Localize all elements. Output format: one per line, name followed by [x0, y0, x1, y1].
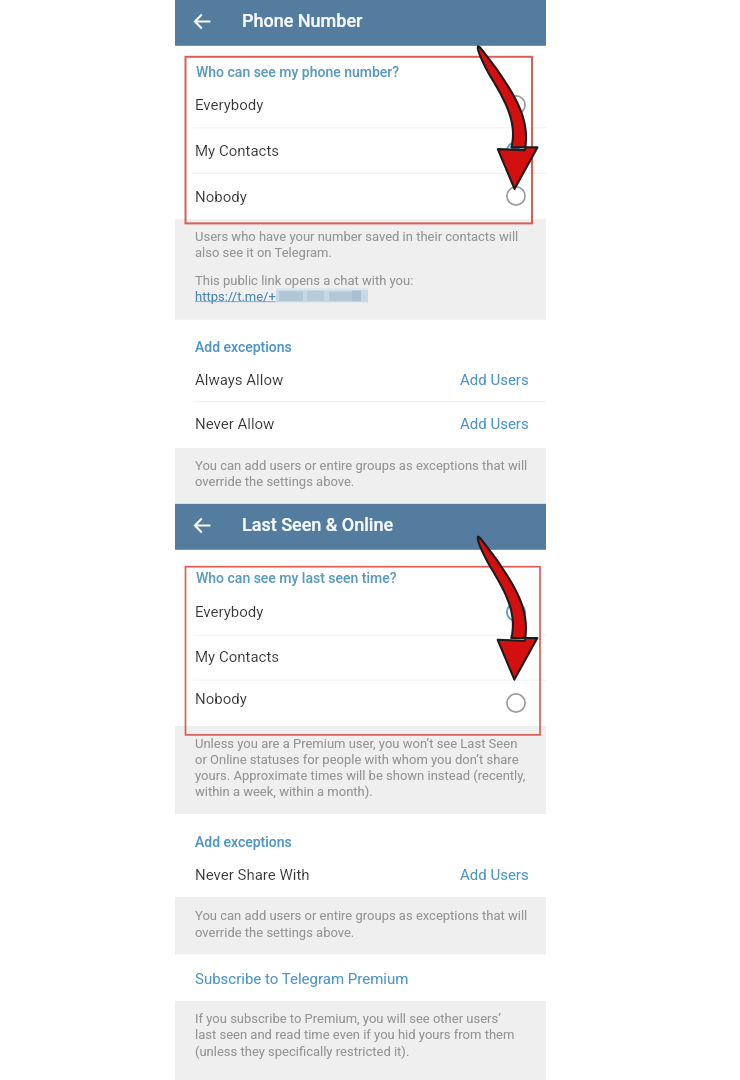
staticText: also see it on Telegram.	[195, 245, 332, 260]
staticText: My Contacts	[195, 142, 280, 160]
button[interactable]: Never Share With	[175, 850, 546, 897]
button[interactable]: Everybody	[175, 82, 546, 128]
staticText: override the settings above.	[195, 925, 355, 940]
staticText: Everybody	[195, 603, 264, 621]
staticText: Add exceptions	[195, 339, 292, 355]
staticText: My Contacts	[195, 648, 280, 666]
staticText: Who can see my phone number?	[196, 64, 400, 80]
button[interactable]: Back	[180, 0, 224, 43]
staticText: Add Users	[460, 415, 529, 433]
staticText: Never Allow	[195, 415, 275, 433]
staticText: Add exceptions	[195, 834, 292, 850]
staticText: Always Allow	[195, 371, 284, 389]
staticText: Subscribe to Telegram Premium	[195, 970, 409, 988]
button[interactable]: Nobody	[175, 174, 546, 219]
staticText: within a week, within a month).	[195, 784, 373, 799]
staticText: Everybody	[195, 96, 264, 114]
staticText: You can add users or entire groups as ex…	[195, 458, 528, 473]
staticText: Never Share With	[195, 866, 310, 884]
button[interactable]: Add exceptions	[175, 823, 546, 859]
button[interactable]: Nobody	[175, 681, 546, 726]
staticText: yours. Approximate times will be shown i…	[195, 768, 526, 783]
staticText: Nobody	[195, 188, 247, 206]
staticText: Nobody	[195, 690, 247, 708]
staticText: Add Users	[460, 866, 529, 884]
button[interactable]: Subscribe to Telegram Premium	[175, 956, 546, 998]
staticText: Add Users	[460, 371, 529, 389]
button[interactable]: https://t.me/+	[195, 289, 276, 304]
button[interactable]: My Contacts	[175, 128, 546, 173]
staticText: (unless they specifically restricted it)…	[195, 1044, 410, 1059]
button[interactable]: My Contacts	[175, 636, 546, 680]
staticText: Last Seen & Online	[242, 514, 394, 535]
staticText: This public link opens a chat with you:	[195, 273, 414, 288]
button[interactable]: Everybody	[175, 589, 546, 635]
staticText: You can add users or entire groups as ex…	[195, 908, 528, 923]
staticText: last seen and read time even if you hid …	[195, 1027, 515, 1042]
staticText: Users who have your number saved in thei…	[195, 229, 519, 244]
button[interactable]: Add exceptions	[175, 328, 546, 364]
button[interactable]: Back	[180, 503, 224, 547]
staticText: Phone Number	[242, 10, 363, 31]
staticText: override the settings above.	[195, 474, 355, 489]
button[interactable]: Always Allow	[175, 356, 546, 401]
button[interactable]: Never Allow	[175, 402, 546, 448]
staticText: Unless you are a Premium user, you won’t…	[195, 736, 518, 751]
staticText: Who can see my last seen time?	[196, 570, 397, 586]
staticText: or Online statuses for people with whom …	[195, 752, 519, 767]
staticText: If you subscribe to Premium, you will se…	[195, 1011, 501, 1026]
